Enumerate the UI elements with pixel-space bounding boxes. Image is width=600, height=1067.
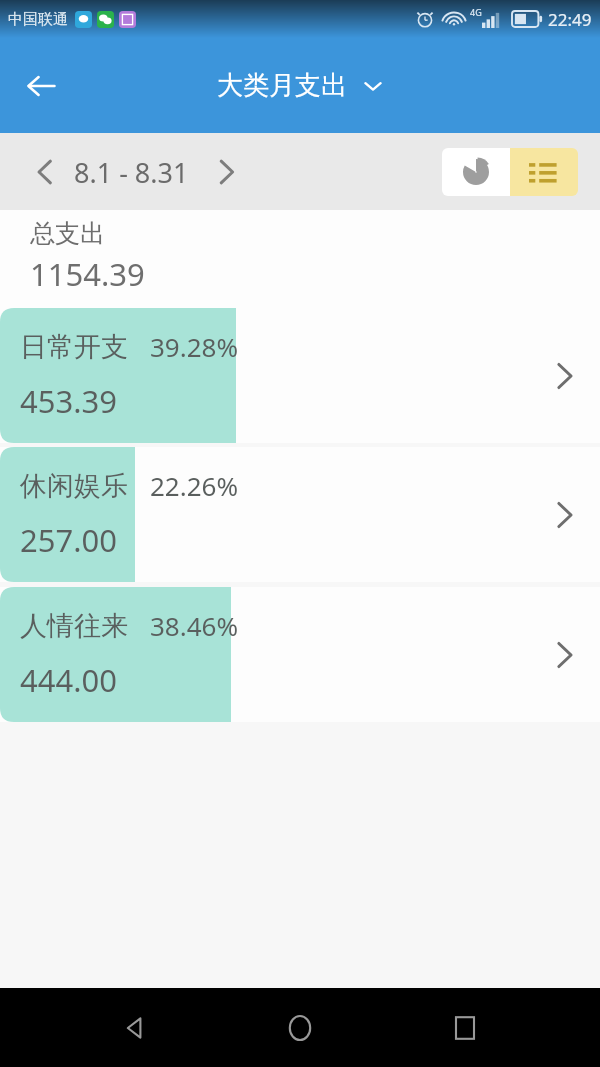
- button[interactable]: Back: [16, 61, 66, 111]
- staticText: 休闲娱乐: [20, 469, 128, 503]
- button[interactable]: List view: [510, 148, 578, 196]
- staticText: 日常开支: [20, 330, 128, 364]
- button[interactable]: 日常开支: [0, 308, 600, 443]
- button[interactable]: 休闲娱乐: [0, 447, 600, 582]
- button[interactable]: Back: [105, 998, 165, 1058]
- staticText: 444.00: [20, 659, 117, 701]
- staticText: 39.28%: [150, 329, 239, 364]
- staticText: 257.00: [20, 519, 117, 561]
- button[interactable]: Previous period: [22, 149, 68, 195]
- staticText: 中国联通: [8, 10, 68, 29]
- button[interactable]: 大类月支出: [209, 63, 391, 108]
- button[interactable]: 人情往来: [0, 587, 600, 722]
- button[interactable]: Pie chart view: [442, 148, 510, 196]
- button[interactable]: Recents: [435, 998, 495, 1058]
- staticText: 38.46%: [150, 608, 239, 643]
- button[interactable]: Home: [270, 998, 330, 1058]
- staticText: 大类月支出: [217, 69, 347, 102]
- staticText: 4G: [470, 6, 482, 18]
- button[interactable]: Next period: [203, 149, 249, 195]
- staticText: 总支出: [30, 218, 105, 249]
- staticText: 人情往来: [20, 609, 128, 643]
- staticText: 1154.39: [30, 253, 145, 295]
- staticText: 22.26%: [150, 468, 239, 503]
- staticText: 8.1 - 8.31: [74, 154, 189, 191]
- staticText: 453.39: [20, 380, 117, 422]
- staticText: 22:49: [548, 8, 592, 31]
